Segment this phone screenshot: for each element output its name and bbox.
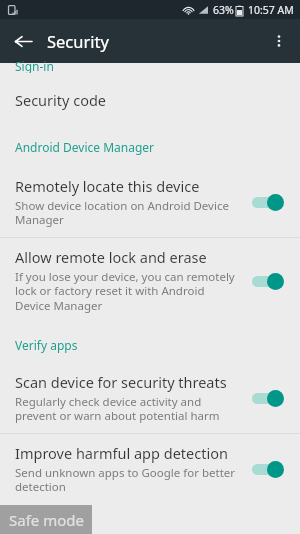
staticText: Safe mode bbox=[9, 510, 84, 530]
staticText: Scan device for security threats bbox=[15, 372, 227, 392]
button[interactable]: Improve harmful app detection bbox=[0, 434, 300, 504]
staticText: Send unknown apps to Google for better d… bbox=[15, 465, 236, 495]
button[interactable]: More options bbox=[262, 24, 296, 58]
button[interactable]: Security code bbox=[0, 78, 300, 122]
button[interactable]: Toggle Remotely locate this device bbox=[248, 189, 290, 215]
staticText: Remotely locate this device bbox=[15, 176, 200, 196]
button[interactable]: Toggle Improve harmful app detection bbox=[248, 456, 290, 482]
staticText: Allow remote lock and erase bbox=[15, 247, 207, 267]
button[interactable]: Allow remote lock and erase bbox=[0, 238, 300, 323]
staticText: Sign-in bbox=[15, 58, 54, 73]
staticText: Improve harmful app detection bbox=[15, 443, 228, 463]
button[interactable]: Scan device for security threats bbox=[0, 363, 300, 433]
staticText: Regularly check device activity and prev… bbox=[15, 394, 220, 424]
staticText: If you lose your device, you can remotel… bbox=[15, 269, 235, 314]
button[interactable]: Toggle Scan device for security threats bbox=[248, 385, 290, 411]
staticText: Verify apps bbox=[15, 337, 78, 353]
staticText: Security code bbox=[15, 90, 107, 110]
staticText: 10:57 AM bbox=[248, 3, 294, 17]
staticText: Android Device Manager bbox=[15, 139, 155, 155]
staticText: 63% bbox=[213, 3, 234, 17]
button[interactable]: Remotely locate this device bbox=[0, 167, 300, 237]
button[interactable]: Toggle Allow remote lock and erase bbox=[248, 268, 290, 294]
staticText: Show device location on Android Device M… bbox=[15, 198, 229, 228]
button[interactable]: Navigate up bbox=[6, 24, 40, 58]
staticText: Security bbox=[47, 30, 109, 52]
